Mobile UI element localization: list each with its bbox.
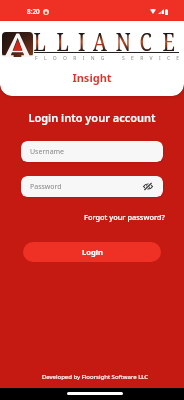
staticText: I [78,24,85,55]
staticText: Insight [0,70,184,85]
staticText: Username [30,147,65,157]
staticText: 8:20 [27,7,40,16]
button[interactable]: Show password [143,183,153,190]
staticText: Developed by Floorsight Software LLC [3,373,184,381]
staticText: C [140,24,152,55]
staticText: A [93,24,107,55]
button[interactable]: Forgot your password? [84,212,165,222]
staticText: Login into your account [0,110,184,125]
staticText: Password [30,182,62,192]
staticText: E [163,24,175,55]
staticText: Login [82,247,103,257]
button[interactable]: Login [23,242,161,262]
staticText: L [57,24,69,55]
button[interactable]: Password [21,176,163,197]
staticText: L [34,24,46,55]
button[interactable]: Username [21,141,163,162]
staticText: N [116,24,130,55]
staticText: F L O O R I N G S E R V I C E S [35,55,184,62]
